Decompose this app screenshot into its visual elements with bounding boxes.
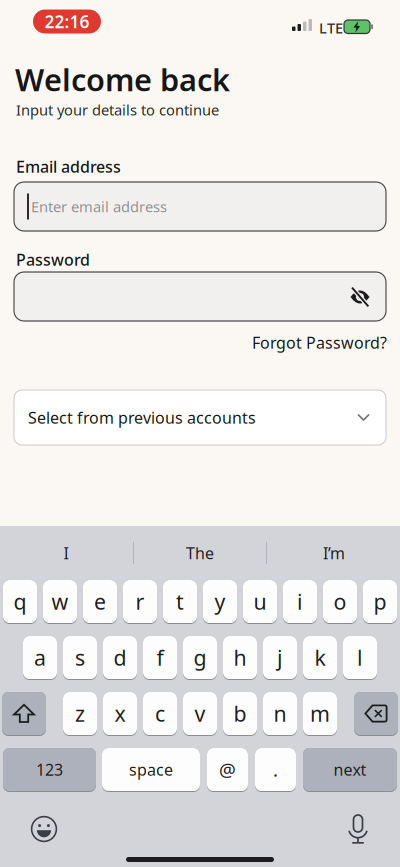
button[interactable]: Dictate bbox=[347, 815, 369, 845]
button[interactable]: I’m bbox=[269, 526, 399, 580]
button[interactable]: y bbox=[203, 580, 237, 624]
staticText: space bbox=[129, 759, 173, 780]
button[interactable]: q bbox=[3, 580, 37, 624]
staticText: . bbox=[273, 757, 278, 782]
button[interactable]: @ bbox=[207, 748, 248, 792]
button[interactable]: l bbox=[343, 636, 377, 680]
button[interactable]: The bbox=[135, 526, 265, 580]
button[interactable]: z bbox=[63, 692, 97, 736]
staticText: t bbox=[176, 587, 184, 616]
button[interactable]: v bbox=[183, 692, 217, 736]
staticText: I’m bbox=[323, 542, 345, 564]
staticText: i bbox=[297, 587, 303, 616]
staticText: Password bbox=[16, 249, 90, 270]
button[interactable]: o bbox=[323, 580, 357, 624]
staticText: j bbox=[277, 643, 283, 672]
button[interactable]: m bbox=[303, 692, 337, 736]
staticText: x bbox=[114, 699, 125, 728]
button[interactable]: Forgot Password? bbox=[252, 332, 387, 353]
button[interactable]: k bbox=[303, 636, 337, 680]
staticText: y bbox=[214, 587, 225, 616]
staticText: Email address bbox=[16, 156, 121, 177]
button[interactable]: g bbox=[183, 636, 217, 680]
button[interactable]: x bbox=[103, 692, 137, 736]
staticText: 22:16 bbox=[44, 10, 89, 33]
staticText: I bbox=[63, 542, 68, 564]
staticText: Select from previous accounts bbox=[28, 407, 256, 428]
staticText: v bbox=[194, 699, 205, 728]
button[interactable]: i bbox=[283, 580, 317, 624]
staticText: next bbox=[333, 759, 366, 780]
button[interactable]: next bbox=[303, 748, 397, 792]
staticText: Enter email address bbox=[31, 197, 167, 216]
staticText: 123 bbox=[36, 759, 63, 780]
button[interactable]: Select from previous accounts bbox=[14, 390, 386, 445]
staticText: b bbox=[233, 699, 246, 728]
button[interactable]: n bbox=[263, 692, 297, 736]
button[interactable]: f bbox=[143, 636, 177, 680]
staticText: o bbox=[333, 587, 346, 616]
staticText: r bbox=[135, 587, 144, 616]
staticText: q bbox=[13, 587, 26, 616]
button[interactable]: Email address bbox=[14, 182, 386, 231]
button[interactable]: u bbox=[243, 580, 277, 624]
button[interactable]: Delete bbox=[354, 692, 398, 736]
button[interactable]: w bbox=[43, 580, 77, 624]
button[interactable]: d bbox=[103, 636, 137, 680]
staticText: c bbox=[155, 699, 165, 728]
button[interactable]: h bbox=[223, 636, 257, 680]
button[interactable]: I bbox=[1, 526, 131, 580]
button[interactable]: t bbox=[163, 580, 197, 624]
staticText: a bbox=[34, 643, 46, 672]
staticText: Input your details to continue bbox=[16, 100, 219, 119]
button[interactable]: Show password bbox=[348, 285, 372, 309]
staticText: @ bbox=[219, 757, 236, 782]
button[interactable]: r bbox=[123, 580, 157, 624]
staticText: k bbox=[314, 643, 325, 672]
staticText: f bbox=[156, 643, 163, 672]
button[interactable]: Password bbox=[14, 272, 386, 321]
staticText: g bbox=[193, 643, 206, 672]
button[interactable]: Return to call bbox=[33, 9, 101, 33]
staticText: Forgot Password? bbox=[252, 332, 387, 353]
button[interactable]: c bbox=[143, 692, 177, 736]
staticText: p bbox=[373, 587, 386, 616]
button[interactable]: e bbox=[83, 580, 117, 624]
staticText: u bbox=[253, 587, 266, 616]
button[interactable]: . bbox=[255, 748, 296, 792]
button[interactable]: space bbox=[102, 748, 200, 792]
button[interactable]: a bbox=[23, 636, 57, 680]
staticText: The bbox=[186, 542, 214, 564]
staticText: l bbox=[357, 643, 363, 672]
staticText: m bbox=[310, 699, 330, 728]
staticText: w bbox=[51, 587, 68, 616]
button[interactable]: p bbox=[363, 580, 397, 624]
button[interactable]: Emoji bbox=[30, 815, 58, 843]
staticText: d bbox=[113, 643, 126, 672]
staticText: Welcome back bbox=[15, 59, 230, 100]
staticText: s bbox=[75, 643, 85, 672]
button[interactable]: j bbox=[263, 636, 297, 680]
button[interactable]: b bbox=[223, 692, 257, 736]
staticText: n bbox=[273, 699, 286, 728]
staticText: LTE bbox=[319, 18, 343, 37]
button[interactable]: s bbox=[63, 636, 97, 680]
button[interactable]: Shift bbox=[2, 692, 46, 736]
staticText: h bbox=[233, 643, 246, 672]
staticText: z bbox=[75, 699, 85, 728]
staticText: e bbox=[94, 587, 106, 616]
button[interactable]: 123 bbox=[3, 748, 96, 792]
